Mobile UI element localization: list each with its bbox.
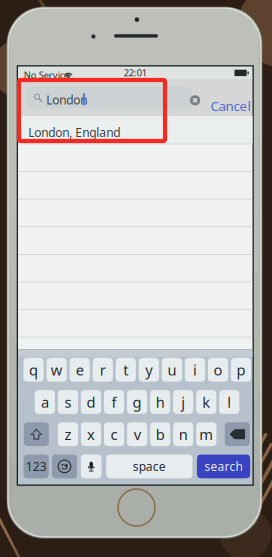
staticText: 123 <box>26 458 47 474</box>
staticText: d <box>86 392 95 412</box>
staticText: No Service <box>24 69 69 81</box>
button[interactable]: j <box>173 390 193 414</box>
staticText: Cancel <box>210 97 250 115</box>
button[interactable]: k <box>196 390 216 414</box>
staticText: search <box>205 458 243 474</box>
button[interactable]: c <box>104 422 124 446</box>
staticText: s <box>64 392 71 412</box>
staticText: h <box>156 392 165 412</box>
staticText: q <box>29 360 38 380</box>
button[interactable]: m <box>196 422 216 446</box>
button[interactable]: search <box>197 454 250 478</box>
button[interactable]: u <box>162 358 182 382</box>
staticText: 22:01 <box>124 67 147 79</box>
button[interactable]: r <box>93 358 113 382</box>
button[interactable]: b <box>150 422 170 446</box>
staticText: r <box>100 360 106 380</box>
staticText: m <box>199 424 213 444</box>
button[interactable]: Emoji <box>52 454 77 478</box>
staticText: b <box>156 424 165 444</box>
staticText: v <box>134 424 141 444</box>
button[interactable]: Cancel <box>205 91 255 121</box>
button[interactable]: y <box>139 358 159 382</box>
staticText: n <box>179 424 188 444</box>
button[interactable]: z <box>58 422 78 446</box>
button[interactable]: s <box>58 390 78 414</box>
staticText: space <box>133 458 166 474</box>
staticText: c <box>111 424 118 444</box>
staticText: i <box>193 360 197 380</box>
button[interactable]: i <box>185 358 205 382</box>
button[interactable]: n <box>173 422 193 446</box>
staticText: u <box>167 360 176 380</box>
staticText: w <box>51 360 63 380</box>
staticText: e <box>76 360 84 380</box>
staticText: London <box>46 92 87 108</box>
staticText: f <box>111 392 116 412</box>
button[interactable]: 123 <box>24 454 49 478</box>
staticText: k <box>202 392 210 412</box>
staticText: g <box>133 392 142 412</box>
button[interactable]: space <box>106 454 192 478</box>
button[interactable]: h <box>150 390 170 414</box>
button[interactable]: Shift <box>24 422 49 446</box>
staticText: z <box>64 424 71 444</box>
button[interactable]: l <box>219 390 239 414</box>
button[interactable]: q <box>23 358 44 382</box>
button[interactable]: Dictate <box>81 454 101 478</box>
button[interactable]: o <box>208 358 228 382</box>
button[interactable]: Delete <box>225 422 250 446</box>
button[interactable]: x <box>81 422 101 446</box>
staticText: j <box>181 392 185 412</box>
button[interactable]: e <box>70 358 90 382</box>
button[interactable]: f <box>104 390 124 414</box>
staticText: y <box>145 360 152 380</box>
staticText: o <box>213 360 222 380</box>
button[interactable]: w <box>46 358 67 382</box>
button[interactable]: t <box>116 358 136 382</box>
staticText: p <box>237 360 246 380</box>
button[interactable]: v <box>127 422 147 446</box>
staticText: x <box>87 424 95 444</box>
staticText: a <box>41 392 49 412</box>
button[interactable]: a <box>35 390 55 414</box>
button[interactable]: p <box>231 358 251 382</box>
staticText: l <box>227 392 231 412</box>
staticText: t <box>123 360 128 380</box>
button[interactable]: London, England <box>18 116 252 144</box>
staticText: London, England <box>28 124 120 140</box>
button[interactable]: d <box>81 390 101 414</box>
button[interactable]: g <box>127 390 147 414</box>
button[interactable]: Clear text <box>185 90 205 110</box>
